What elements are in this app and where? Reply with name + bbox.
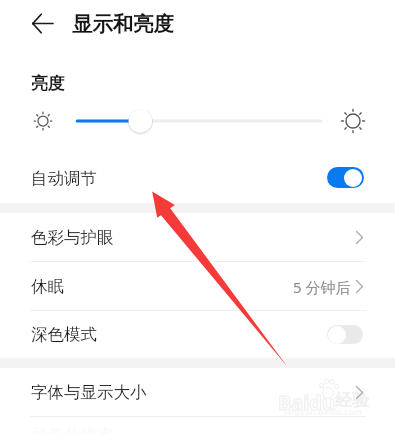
staticText: Baidu [278, 389, 335, 416]
staticText: jingyan.baidu.com [284, 406, 363, 418]
staticText: 深色模式 [31, 324, 97, 345]
staticText: 休眠 [31, 276, 64, 297]
staticText: 显示和亮度 [72, 11, 174, 37]
staticText: 5 分钟后 [293, 277, 351, 297]
button[interactable]: 深色模式 [0, 310, 395, 358]
button[interactable]: 色彩与护眼 [0, 213, 395, 262]
staticText: 经验 [335, 390, 369, 411]
staticText: 色彩与护眼 [31, 227, 114, 248]
staticText: 字体与显示大小 [31, 382, 147, 403]
button[interactable]: Back [25, 6, 59, 40]
button[interactable]: Auto brightness on [327, 167, 364, 188]
button[interactable]: 字体与显示大小 [0, 368, 395, 417]
button[interactable]: 休眠 [0, 262, 395, 311]
button[interactable]: 自动调节 [0, 155, 395, 200]
button[interactable]: Brightness slider [62, 104, 333, 138]
staticText: 自动调节 [31, 168, 97, 189]
staticText: 亮度 [31, 73, 65, 94]
button[interactable]: Dark mode off [327, 325, 363, 344]
